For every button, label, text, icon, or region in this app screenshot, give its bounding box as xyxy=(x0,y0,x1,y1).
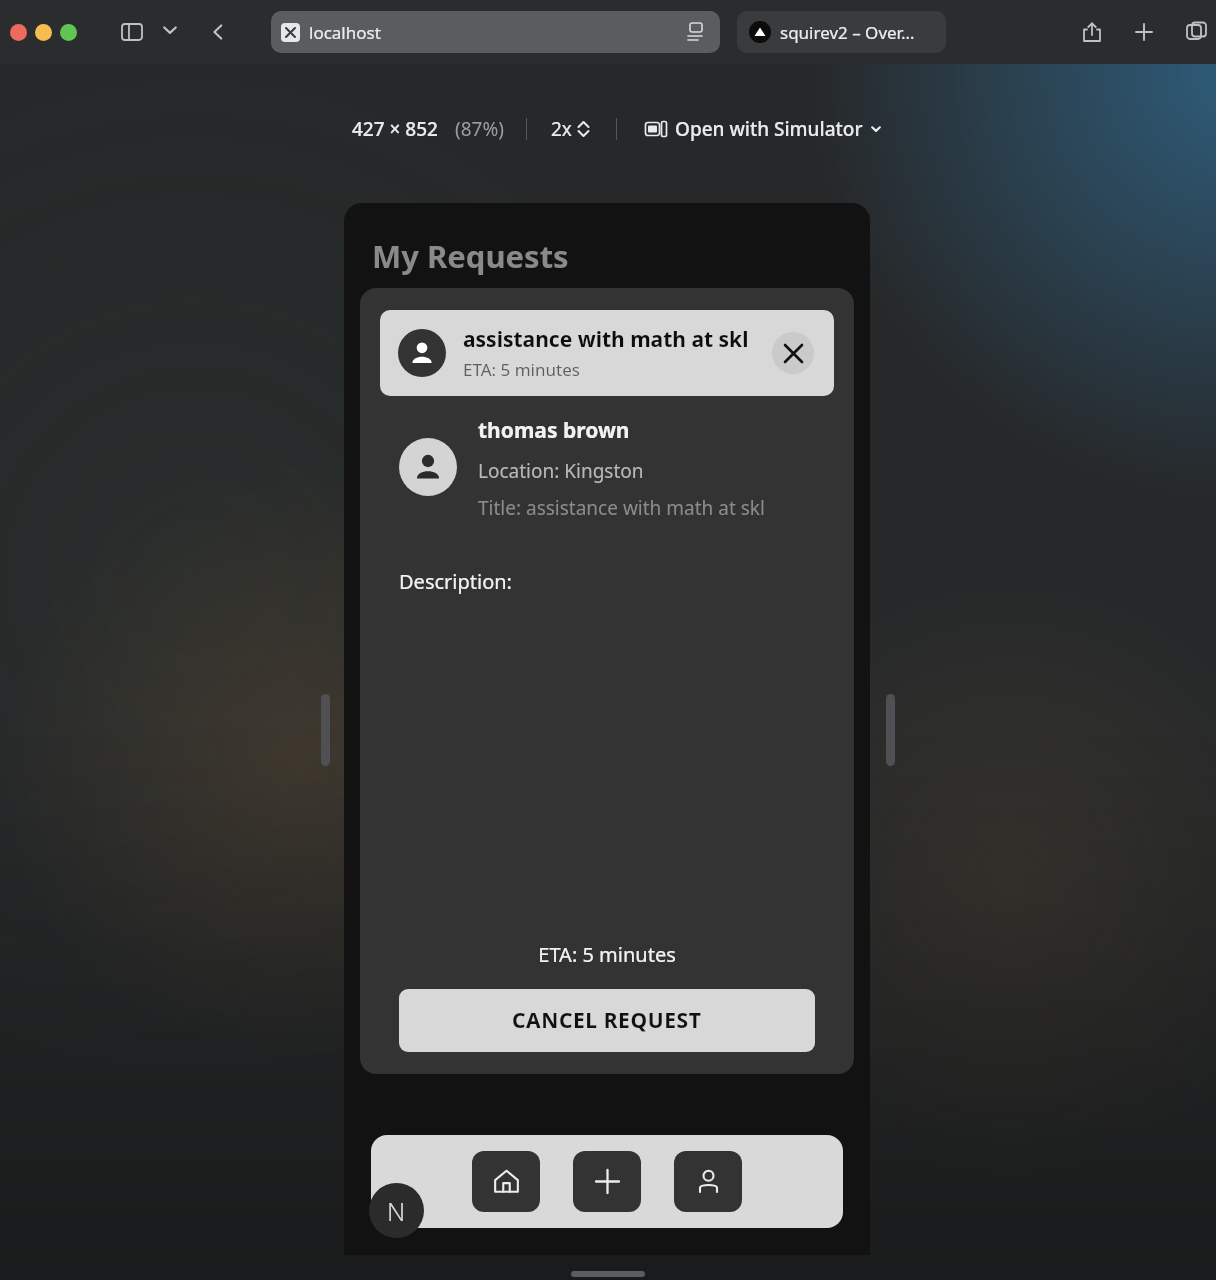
staticText: 2x xyxy=(551,116,572,142)
button[interactable]: Profile xyxy=(674,1151,742,1212)
button[interactable]: CANCEL REQUEST xyxy=(399,989,815,1052)
button[interactable]: squirev2 – Over… xyxy=(737,11,946,53)
staticText: (87%) xyxy=(455,116,504,142)
button[interactable]: Sidebar options xyxy=(156,16,184,44)
button[interactable]: Toggle sidebar xyxy=(116,16,148,48)
staticText: Location: Kingston xyxy=(478,458,644,484)
button[interactable]: Open with Simulator xyxy=(645,116,882,142)
staticText: Title: assistance with math at skl xyxy=(478,495,765,521)
button[interactable]: assistance with math at skl xyxy=(380,310,834,396)
button[interactable]: Resize viewport xyxy=(321,694,330,766)
button[interactable] xyxy=(60,24,77,41)
staticText: assistance with math at skl xyxy=(463,325,749,354)
staticText: squirev2 – Over… xyxy=(780,21,915,44)
button[interactable]: New tab xyxy=(1128,16,1160,48)
button[interactable]: Next.js dev tools xyxy=(369,1183,424,1238)
staticText: ETA: 5 minutes xyxy=(360,941,854,968)
button[interactable]: Share xyxy=(1076,16,1108,48)
button[interactable]: 2x xyxy=(551,116,590,142)
button[interactable]: Home xyxy=(472,1151,540,1212)
staticText: N xyxy=(387,1194,406,1228)
staticText: My Requests xyxy=(372,235,569,277)
button[interactable]: Show tab overview xyxy=(1181,16,1213,48)
button[interactable]: Resize viewport xyxy=(886,694,895,766)
staticText: localhost xyxy=(309,21,381,44)
button[interactable]: Create request xyxy=(573,1151,641,1212)
staticText: CANCEL REQUEST xyxy=(512,1006,702,1035)
staticText: thomas brown xyxy=(478,416,630,445)
button[interactable] xyxy=(10,24,27,41)
button[interactable] xyxy=(35,24,52,41)
staticText: Open with Simulator xyxy=(675,116,863,142)
staticText: 427 × 852 xyxy=(352,116,438,142)
staticText: ETA: 5 minutes xyxy=(463,358,580,381)
button[interactable]: Dismiss request xyxy=(772,332,814,374)
staticText: Description: xyxy=(399,568,512,595)
button[interactable]: Back xyxy=(202,16,234,48)
button[interactable]: localhost xyxy=(271,11,720,53)
